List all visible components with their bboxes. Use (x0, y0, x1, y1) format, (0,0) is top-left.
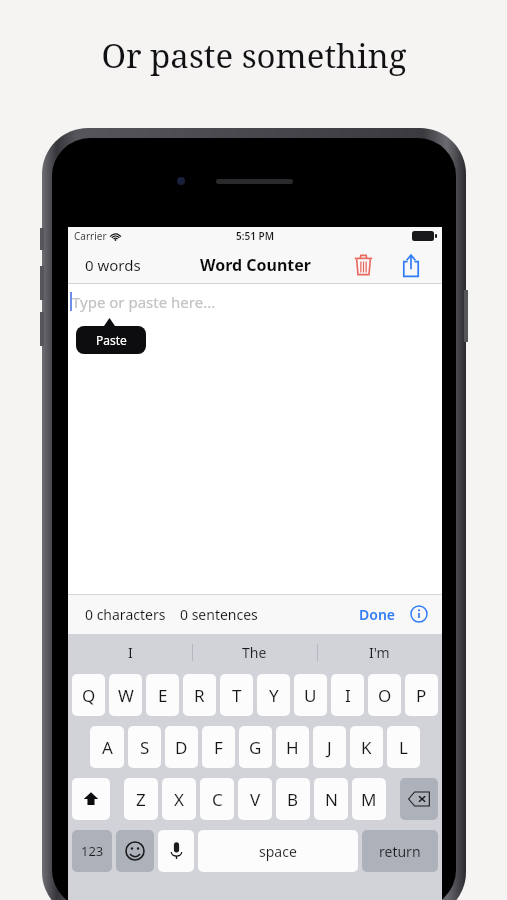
staticText: I (345, 684, 351, 707)
staticText: U (304, 684, 317, 707)
button[interactable]: N (314, 778, 348, 820)
button[interactable]: Paste (76, 318, 146, 354)
staticText: Paste (96, 332, 127, 348)
staticText: T (232, 684, 242, 707)
button[interactable]: F (202, 726, 235, 768)
staticText: C (212, 788, 223, 811)
button[interactable]: B (276, 778, 310, 820)
button[interactable]: G (239, 726, 272, 768)
button[interactable]: V (238, 778, 272, 820)
button[interactable]: Shift (72, 778, 110, 820)
button[interactable]: 123 (72, 830, 112, 872)
button[interactable]: I'm (317, 634, 442, 671)
button[interactable]: return (362, 830, 438, 872)
button[interactable]: Backspace (400, 778, 438, 820)
button[interactable]: T (220, 674, 253, 716)
button[interactable]: L (387, 726, 420, 768)
button[interactable]: Info (408, 603, 430, 625)
button[interactable]: U (294, 674, 327, 716)
button[interactable]: Y (257, 674, 290, 716)
staticText: G (249, 736, 262, 759)
button[interactable]: The (192, 634, 317, 671)
button[interactable]: M (352, 778, 386, 820)
button[interactable]: X (162, 778, 196, 820)
staticText: L (399, 736, 408, 759)
staticText: I (128, 643, 133, 662)
staticText: J (327, 736, 332, 759)
staticText: P (416, 684, 427, 707)
staticText: E (158, 684, 168, 707)
staticText: O (378, 684, 392, 707)
staticText: M (361, 788, 377, 811)
button[interactable]: I (68, 634, 192, 671)
button[interactable]: Delete (346, 248, 380, 282)
staticText: Q (82, 684, 96, 707)
staticText: 5:51 PM (236, 229, 274, 243)
button[interactable]: S (128, 726, 161, 768)
button[interactable]: Q (72, 674, 105, 716)
button[interactable]: E (146, 674, 179, 716)
button[interactable]: Z (124, 778, 158, 820)
staticText: Type or paste here... (72, 292, 216, 312)
staticText: K (361, 736, 372, 759)
staticText: Y (269, 684, 279, 707)
button[interactable]: 0 sentences (180, 605, 258, 624)
button[interactable]: Share (394, 248, 428, 282)
staticText: W (118, 684, 134, 707)
staticText: Carrier (74, 229, 107, 243)
button[interactable]: H (276, 726, 309, 768)
button[interactable]: P (405, 674, 438, 716)
button[interactable]: D (165, 726, 198, 768)
staticText: space (259, 842, 297, 861)
staticText: X (174, 788, 184, 811)
staticText: Word Counter (200, 254, 311, 276)
staticText: N (325, 788, 338, 811)
staticText: H (286, 736, 299, 759)
staticText: Or paste something (101, 33, 407, 78)
button[interactable]: 0 characters (85, 605, 166, 624)
staticText: V (250, 788, 261, 811)
staticText: A (102, 736, 113, 759)
button[interactable]: I (331, 674, 364, 716)
button[interactable]: W (109, 674, 142, 716)
staticText: Z (136, 788, 146, 811)
button[interactable]: Emoji (116, 830, 154, 872)
staticText: The (242, 643, 267, 662)
button[interactable]: space (198, 830, 358, 872)
staticText: 123 (81, 842, 104, 860)
staticText: return (379, 842, 421, 861)
staticText: I'm (369, 643, 390, 662)
button[interactable]: R (183, 674, 216, 716)
button[interactable]: O (368, 674, 401, 716)
button[interactable]: C (200, 778, 234, 820)
button[interactable]: Dictate (158, 830, 194, 872)
button[interactable]: 0 words (85, 255, 141, 275)
button[interactable]: Done (355, 605, 400, 624)
staticText: R (194, 684, 205, 707)
staticText: S (140, 736, 150, 759)
staticText: D (175, 736, 188, 759)
staticText: F (214, 736, 223, 759)
button[interactable]: A (90, 726, 124, 768)
staticText: B (287, 788, 299, 811)
button[interactable]: K (350, 726, 383, 768)
button[interactable]: J (313, 726, 346, 768)
